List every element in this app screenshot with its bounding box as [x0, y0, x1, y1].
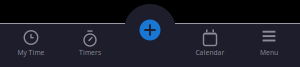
button[interactable]: Calendar — [180, 23, 240, 67]
staticText: Menu — [260, 48, 278, 57]
staticText: My Time — [17, 48, 44, 57]
staticText: Timers — [79, 48, 101, 57]
staticText: Calendar — [195, 48, 224, 57]
button[interactable]: My Time — [1, 23, 61, 67]
button[interactable]: Timers — [60, 23, 120, 67]
button[interactable]: Menu — [239, 23, 299, 67]
button[interactable]: Add — [134, 14, 165, 45]
